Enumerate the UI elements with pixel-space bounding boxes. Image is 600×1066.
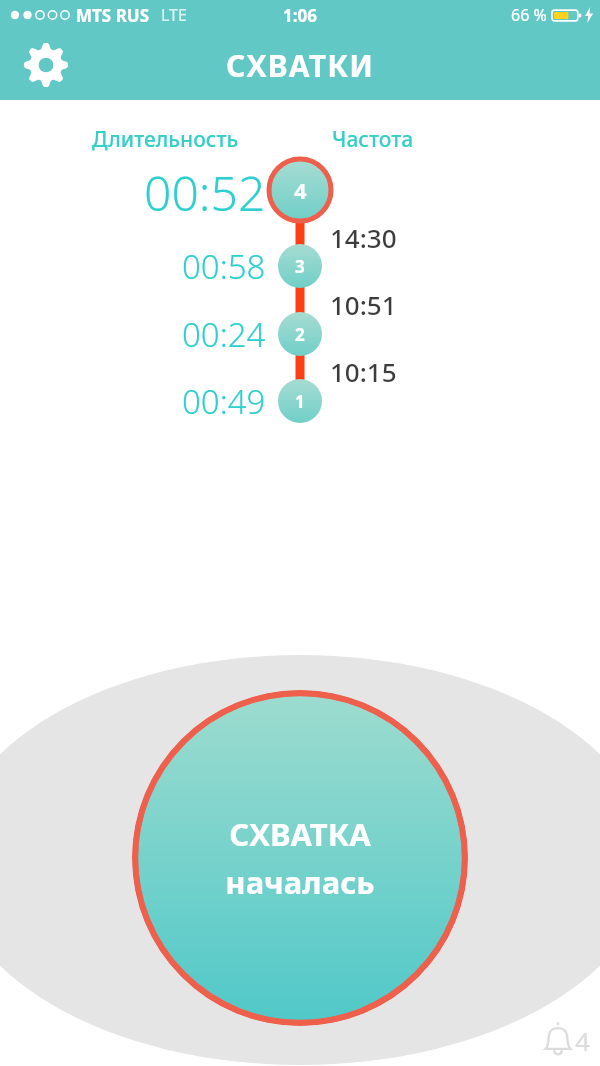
staticText: началась: [225, 861, 375, 903]
button[interactable]: СХВАТКА: [132, 690, 468, 1026]
staticText: 10:51: [330, 287, 397, 322]
staticText: 10:15: [330, 354, 397, 389]
staticText: Длительность: [92, 125, 239, 154]
staticText: 2: [295, 323, 305, 346]
button[interactable]: Settings: [18, 37, 74, 93]
staticText: СХВАТКА: [229, 813, 371, 855]
staticText: MTS RUS: [76, 4, 149, 27]
staticText: 00:24: [182, 312, 266, 357]
staticText: 66 %: [511, 4, 547, 26]
staticText: 3: [295, 255, 305, 278]
staticText: 00:52: [144, 160, 266, 220]
staticText: 4: [294, 175, 307, 205]
staticText: 1:06: [283, 4, 317, 27]
staticText: 4: [575, 1023, 590, 1058]
staticText: LTE: [161, 4, 187, 26]
staticText: 00:49: [182, 379, 266, 424]
staticText: 14:30: [330, 220, 397, 255]
button[interactable]: Notifications: [541, 1020, 590, 1058]
staticText: 00:58: [182, 244, 266, 289]
staticText: СХВАТКИ: [226, 45, 375, 86]
staticText: 1: [295, 390, 305, 413]
staticText: Частота: [332, 125, 414, 154]
